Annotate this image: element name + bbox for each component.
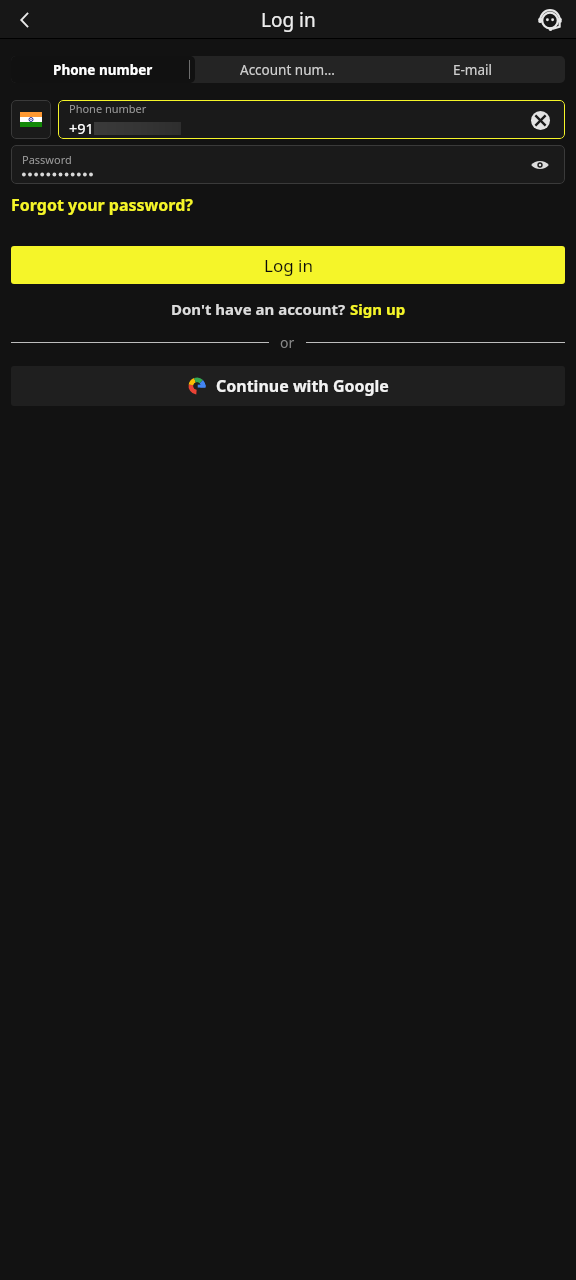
button[interactable]: Phone number	[58, 100, 565, 139]
staticText: Don't have an account?	[171, 299, 350, 319]
button[interactable]: Sign up	[350, 299, 406, 319]
staticText: Password	[22, 152, 72, 167]
button[interactable]: Clear	[527, 107, 553, 133]
staticText: Continue with Google	[216, 375, 389, 397]
button[interactable]: Log in	[11, 246, 565, 284]
button[interactable]: Continue with Google	[11, 366, 565, 406]
button[interactable]: Forgot your password?	[11, 194, 193, 216]
button[interactable]: Country code India	[11, 100, 51, 139]
button[interactable]: Back	[4, 0, 46, 39]
staticText: Log in	[264, 254, 313, 277]
staticText: +91	[69, 118, 94, 138]
staticText: Log in	[261, 7, 316, 33]
button[interactable]: Customer support	[529, 0, 571, 39]
button[interactable]: E-mail	[380, 56, 565, 83]
staticText: Phone number	[53, 61, 153, 79]
button[interactable]: Account num...	[195, 56, 380, 83]
staticText: Phone number	[69, 101, 147, 116]
staticText: Sign up	[350, 299, 406, 319]
button[interactable]: Password	[11, 145, 565, 184]
button[interactable]: Show password	[527, 152, 553, 178]
staticText: E-mail	[453, 61, 493, 79]
staticText: Account num...	[240, 61, 335, 79]
staticText: or	[280, 333, 295, 352]
button[interactable]: Phone number	[11, 56, 195, 83]
